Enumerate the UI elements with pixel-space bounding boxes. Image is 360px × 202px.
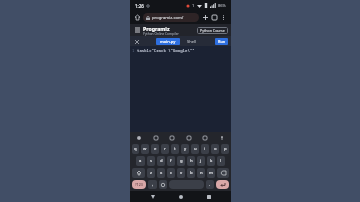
button[interactable]: d	[157, 156, 165, 166]
button[interactable]: Comma	[148, 180, 157, 189]
staticText: .	[209, 181, 211, 188]
button[interactable]: i	[201, 144, 209, 154]
button[interactable]: Run	[215, 38, 228, 45]
staticText: 1	[192, 3, 195, 8]
staticText: x	[160, 170, 163, 176]
button[interactable]: Key tool 1	[152, 134, 160, 142]
button[interactable]: Emoji	[159, 180, 167, 189]
button[interactable]: ?123	[132, 180, 146, 189]
button[interactable]: Back	[147, 191, 158, 202]
staticText: l	[220, 158, 222, 164]
staticText: e	[154, 146, 157, 152]
button[interactable]: a	[136, 156, 145, 166]
staticText: Programiz	[143, 25, 170, 32]
button[interactable]: More options	[219, 13, 228, 22]
button[interactable]: Backspace	[217, 168, 229, 178]
button[interactable]: l	[217, 156, 225, 166]
staticText: Python Online Compiler	[143, 32, 179, 36]
staticText: j	[200, 158, 202, 164]
button[interactable]: h	[187, 156, 195, 166]
staticText: w	[143, 146, 147, 152]
staticText: n	[200, 170, 203, 176]
staticText: i	[204, 146, 206, 152]
button[interactable]: p	[221, 144, 229, 154]
button[interactable]: j	[197, 156, 205, 166]
button[interactable]: y	[181, 144, 189, 154]
staticText: f	[170, 158, 172, 164]
staticText: t	[174, 146, 176, 152]
button[interactable]: s	[147, 156, 155, 166]
button[interactable]: b	[187, 168, 195, 178]
staticText: Run	[218, 39, 226, 44]
staticText: a	[139, 158, 142, 164]
button[interactable]: Programiz	[143, 25, 197, 36]
staticText: g	[180, 158, 183, 164]
staticText: s	[150, 158, 153, 164]
button[interactable]: main.py	[156, 38, 180, 45]
button[interactable]: Home	[133, 13, 142, 22]
button[interactable]: Enter	[216, 180, 229, 189]
button[interactable]: Python Course	[197, 27, 228, 34]
button[interactable]: Key tool 4	[201, 134, 209, 142]
staticText: z	[150, 170, 152, 176]
button[interactable]: t	[171, 144, 179, 154]
staticText: programiz.com/python-p	[152, 15, 196, 21]
staticText: b	[190, 170, 193, 176]
staticText: v	[180, 170, 183, 176]
button[interactable]: Key tool 2	[168, 134, 176, 142]
button[interactable]: New tab	[201, 13, 210, 22]
staticText: 86%	[218, 3, 226, 8]
staticText: q	[134, 146, 137, 152]
button[interactable]: w	[141, 144, 149, 154]
button[interactable]: f	[167, 156, 175, 166]
staticText: task1="Crack \"Google\""	[137, 48, 195, 53]
button[interactable]: Key tool 3	[185, 134, 193, 142]
button[interactable]: e	[151, 144, 159, 154]
button[interactable]	[169, 180, 204, 189]
button[interactable]: Menu	[133, 26, 141, 34]
staticText: ?123	[135, 182, 143, 187]
staticText: d	[160, 158, 163, 164]
button[interactable]: k	[207, 156, 215, 166]
button[interactable]: Close	[133, 38, 140, 45]
staticText: Shell	[187, 39, 196, 44]
staticText: m	[209, 170, 213, 176]
button[interactable]: Key tool 5	[218, 134, 226, 142]
button[interactable]: Shell	[185, 38, 198, 45]
staticText: ,	[152, 181, 154, 188]
staticText: o	[214, 146, 217, 152]
button[interactable]: programiz.com/python-p	[143, 13, 199, 22]
button[interactable]: Period	[206, 180, 214, 189]
staticText: y	[184, 146, 187, 152]
staticText: 1	[132, 48, 135, 53]
staticText: 1:26	[135, 3, 144, 9]
staticText: p	[224, 146, 227, 152]
button[interactable]: c	[167, 168, 175, 178]
button[interactable]: n	[197, 168, 205, 178]
button[interactable]: z	[147, 168, 155, 178]
button[interactable]: Shift	[132, 168, 145, 178]
button[interactable]: q	[132, 144, 139, 154]
button[interactable]: u	[191, 144, 199, 154]
button[interactable]: Recents	[203, 191, 214, 202]
staticText: c	[170, 170, 173, 176]
button[interactable]: v	[177, 168, 185, 178]
button[interactable]: m	[207, 168, 215, 178]
button[interactable]: r	[161, 144, 169, 154]
staticText: Python Course	[200, 28, 225, 33]
button[interactable]: Home	[175, 191, 186, 202]
staticText: h	[190, 158, 193, 164]
staticText: main.py	[160, 39, 176, 44]
button[interactable]: Key tool 0	[135, 134, 143, 142]
button[interactable]: g	[177, 156, 185, 166]
button[interactable]: Tabs	[210, 13, 219, 22]
staticText: r	[164, 146, 166, 152]
staticText: k	[210, 158, 213, 164]
staticText: u	[194, 146, 197, 152]
button[interactable]: x	[157, 168, 165, 178]
button[interactable]: o	[211, 144, 219, 154]
